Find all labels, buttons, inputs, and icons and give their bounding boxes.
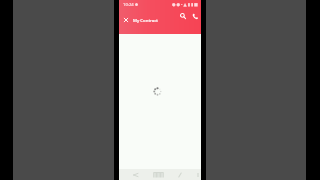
button[interactable]: Search <box>177 10 188 21</box>
staticText: 10:24 <box>123 2 134 8</box>
staticText: My Contract <box>133 17 158 23</box>
button[interactable]: Home <box>152 170 165 179</box>
button[interactable]: Close <box>121 15 131 25</box>
button[interactable]: Back <box>131 170 140 179</box>
button[interactable]: Call <box>189 10 200 21</box>
button[interactable]: More options <box>194 170 201 179</box>
staticText: ● ● • ▲ ▮ ▮ ■ <box>172 2 198 7</box>
button[interactable]: Recents <box>175 170 184 179</box>
